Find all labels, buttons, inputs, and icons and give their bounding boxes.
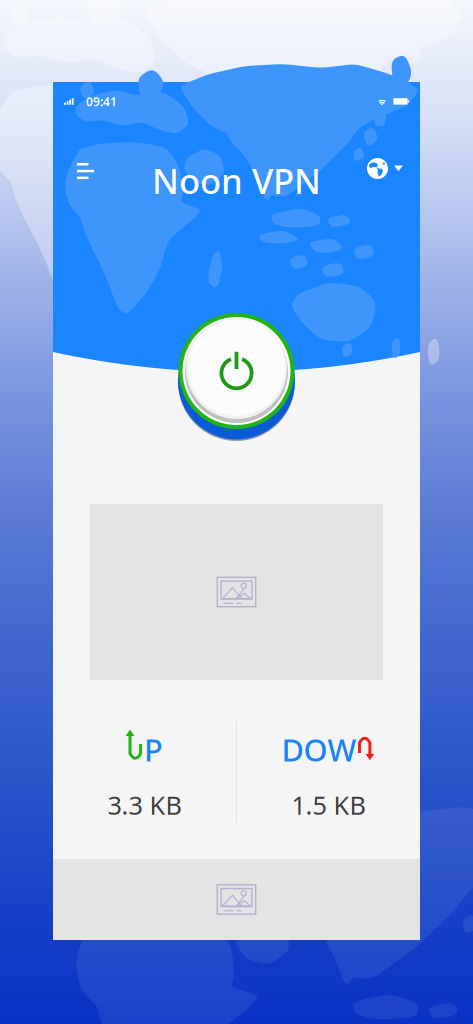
button[interactable]: Select region xyxy=(362,155,408,207)
staticText: 1.5 KB xyxy=(291,788,365,822)
staticText: Noon VPN xyxy=(152,157,321,203)
button[interactable]: Connect xyxy=(173,313,299,447)
button[interactable]: Menu xyxy=(65,155,106,207)
staticText: 3.3 KB xyxy=(107,788,181,822)
staticText: P xyxy=(144,729,163,770)
staticText: DOW xyxy=(281,729,356,770)
staticText: 09:41 xyxy=(86,93,117,109)
